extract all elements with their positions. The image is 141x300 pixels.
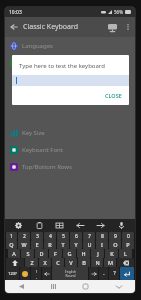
staticText: F xyxy=(54,250,57,257)
button[interactable] xyxy=(12,75,129,86)
button[interactable]: 0 xyxy=(122,232,134,240)
button[interactable]: K xyxy=(105,249,118,258)
button[interactable]: Predictions & Corrections xyxy=(5,54,135,71)
button[interactable]: E xyxy=(31,240,43,249)
button[interactable]: B xyxy=(78,258,90,267)
button[interactable]: C xyxy=(52,258,64,267)
button[interactable]: 123? xyxy=(6,267,19,280)
staticText: 1 xyxy=(10,233,13,240)
button[interactable]: Voice input xyxy=(115,219,128,232)
staticText: T xyxy=(61,241,65,248)
button[interactable]: Q xyxy=(6,240,17,249)
button[interactable]: V xyxy=(65,258,77,267)
staticText: Languages xyxy=(22,42,53,50)
staticText: V xyxy=(69,259,73,266)
staticText: English Round xyxy=(65,270,76,278)
staticText: 9 xyxy=(114,233,117,240)
staticText: Classic Keyboard xyxy=(23,22,103,32)
staticText: B xyxy=(82,259,86,266)
staticText: A xyxy=(12,250,16,257)
staticText: 5 xyxy=(62,233,65,240)
staticText: 7 xyxy=(88,233,91,240)
button[interactable]: Key Size xyxy=(5,124,135,141)
staticText: 2 xyxy=(23,233,26,240)
button[interactable]: Y xyxy=(70,240,82,249)
staticText: R xyxy=(48,241,52,248)
button[interactable]: G xyxy=(63,249,76,258)
button[interactable]: Recents xyxy=(37,280,69,293)
button[interactable]: J xyxy=(91,249,104,258)
staticText: 56% xyxy=(114,9,123,15)
staticText: 0 xyxy=(127,233,130,240)
button[interactable]: 8 xyxy=(96,232,108,240)
staticText: M xyxy=(108,259,113,266)
staticText: Q xyxy=(9,241,14,248)
button[interactable]: L xyxy=(119,249,132,258)
button[interactable]: Clipboard xyxy=(33,219,46,232)
button[interactable]: I xyxy=(96,240,108,249)
button[interactable]: S xyxy=(21,249,34,258)
staticText: C xyxy=(56,259,60,266)
button[interactable]: D xyxy=(35,249,48,258)
button[interactable]: Home xyxy=(69,280,102,293)
staticText: 10:03 xyxy=(9,9,22,16)
staticText: ! , xyxy=(36,269,37,279)
staticText: 3 xyxy=(36,233,39,240)
staticText: K xyxy=(110,250,114,257)
button[interactable]: M xyxy=(104,258,116,267)
button[interactable]: Settings xyxy=(12,219,25,232)
button[interactable]: 2 xyxy=(18,232,30,240)
button[interactable]: ? xyxy=(109,267,119,280)
button[interactable]: F xyxy=(49,249,62,258)
button[interactable]: Backspace xyxy=(117,258,134,267)
button[interactable]: Cursor right xyxy=(89,267,98,280)
button[interactable]: 6 xyxy=(70,232,82,240)
button[interactable]: Move right xyxy=(94,219,107,232)
button[interactable]: 9 xyxy=(109,232,121,240)
button[interactable]: 1 xyxy=(6,232,17,240)
button[interactable]: Top/Bottom Rows xyxy=(5,158,135,175)
button[interactable]: R xyxy=(44,240,56,249)
button[interactable]: Emoji xyxy=(20,267,30,280)
button[interactable]: A xyxy=(8,249,20,258)
button[interactable]: More options xyxy=(121,20,135,34)
button[interactable]: Keyboard Font xyxy=(5,141,135,158)
button[interactable]: U xyxy=(83,240,95,249)
button[interactable]: Enter xyxy=(120,267,134,280)
button[interactable]: Cursor left xyxy=(42,267,51,280)
button[interactable]: W xyxy=(18,240,30,249)
staticText: . xyxy=(103,270,105,277)
button[interactable]: ! , xyxy=(31,267,41,280)
button[interactable]: English Round xyxy=(52,267,88,280)
staticText: ? xyxy=(113,270,116,277)
button[interactable]: 5 xyxy=(57,232,69,240)
button[interactable]: Back xyxy=(5,18,23,36)
staticText: 123? xyxy=(8,271,17,276)
button[interactable]: Hide keyboard xyxy=(5,280,37,293)
button[interactable]: Move left xyxy=(74,219,87,232)
button[interactable]: Grid xyxy=(53,219,66,232)
button[interactable]: P xyxy=(122,240,134,249)
button[interactable]: O xyxy=(109,240,121,249)
staticText: J xyxy=(97,250,99,257)
staticText: Keyboard Font xyxy=(22,146,63,154)
button[interactable]: Languages xyxy=(5,37,135,54)
button[interactable]: N xyxy=(91,258,103,267)
button[interactable]: CLOSE xyxy=(98,88,129,103)
staticText: N xyxy=(95,259,100,266)
staticText: Y xyxy=(74,241,78,248)
button[interactable]: T xyxy=(57,240,69,249)
button[interactable]: X xyxy=(39,258,51,267)
button[interactable]: Shift xyxy=(6,258,24,267)
staticText: Predictions & Corrections xyxy=(22,59,94,67)
button[interactable]: H xyxy=(77,249,90,258)
button[interactable]: 4 xyxy=(44,232,56,240)
staticText: I xyxy=(101,241,103,248)
button[interactable]: Z xyxy=(25,258,38,267)
staticText: G xyxy=(67,250,72,257)
button[interactable]: Back xyxy=(102,280,135,293)
button[interactable]: Test keyboard xyxy=(103,18,121,36)
button[interactable]: 7 xyxy=(83,232,95,240)
button[interactable]: . xyxy=(99,267,108,280)
button[interactable]: 3 xyxy=(31,232,43,240)
